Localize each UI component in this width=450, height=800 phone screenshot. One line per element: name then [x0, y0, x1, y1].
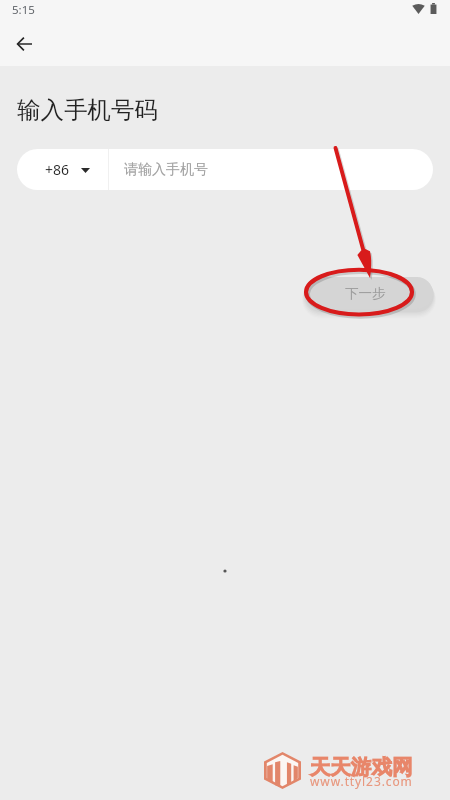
button[interactable]: Back — [6, 26, 42, 62]
staticText: 5:15 — [12, 2, 35, 18]
button[interactable]: Country code +86 — [17, 149, 109, 190]
button[interactable]: Phone number input — [109, 149, 433, 190]
staticText: 天天游戏网 — [310, 754, 413, 780]
staticText: +86 — [45, 160, 70, 179]
staticText: 下一步 — [345, 285, 386, 302]
staticText: 请输入手机号 — [124, 161, 208, 179]
button[interactable]: 下一步 — [305, 277, 433, 309]
staticText: 输入手机号码 — [17, 95, 158, 125]
staticText: www.ttyl23.com — [310, 773, 413, 789]
